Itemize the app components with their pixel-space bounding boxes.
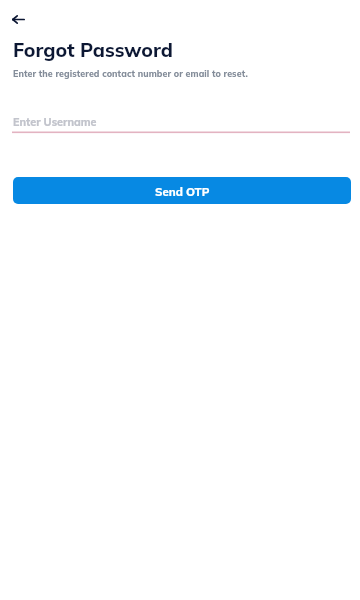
button[interactable]: Enter Username	[12, 108, 350, 135]
staticText: Enter Username	[13, 115, 97, 129]
staticText: Enter the registered contact number or e…	[13, 68, 248, 79]
staticText: Forgot Password	[13, 38, 173, 62]
button[interactable]: Send OTP	[13, 177, 351, 204]
staticText: Send OTP	[155, 185, 210, 199]
button[interactable]: Back	[4, 5, 32, 33]
